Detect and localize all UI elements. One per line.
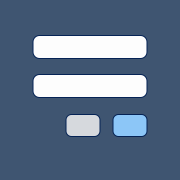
button[interactable]: First field: [32, 35, 147, 59]
button[interactable]: Second field: [32, 74, 147, 98]
button[interactable]: Confirm: [112, 114, 147, 137]
button[interactable]: Cancel: [65, 114, 100, 137]
